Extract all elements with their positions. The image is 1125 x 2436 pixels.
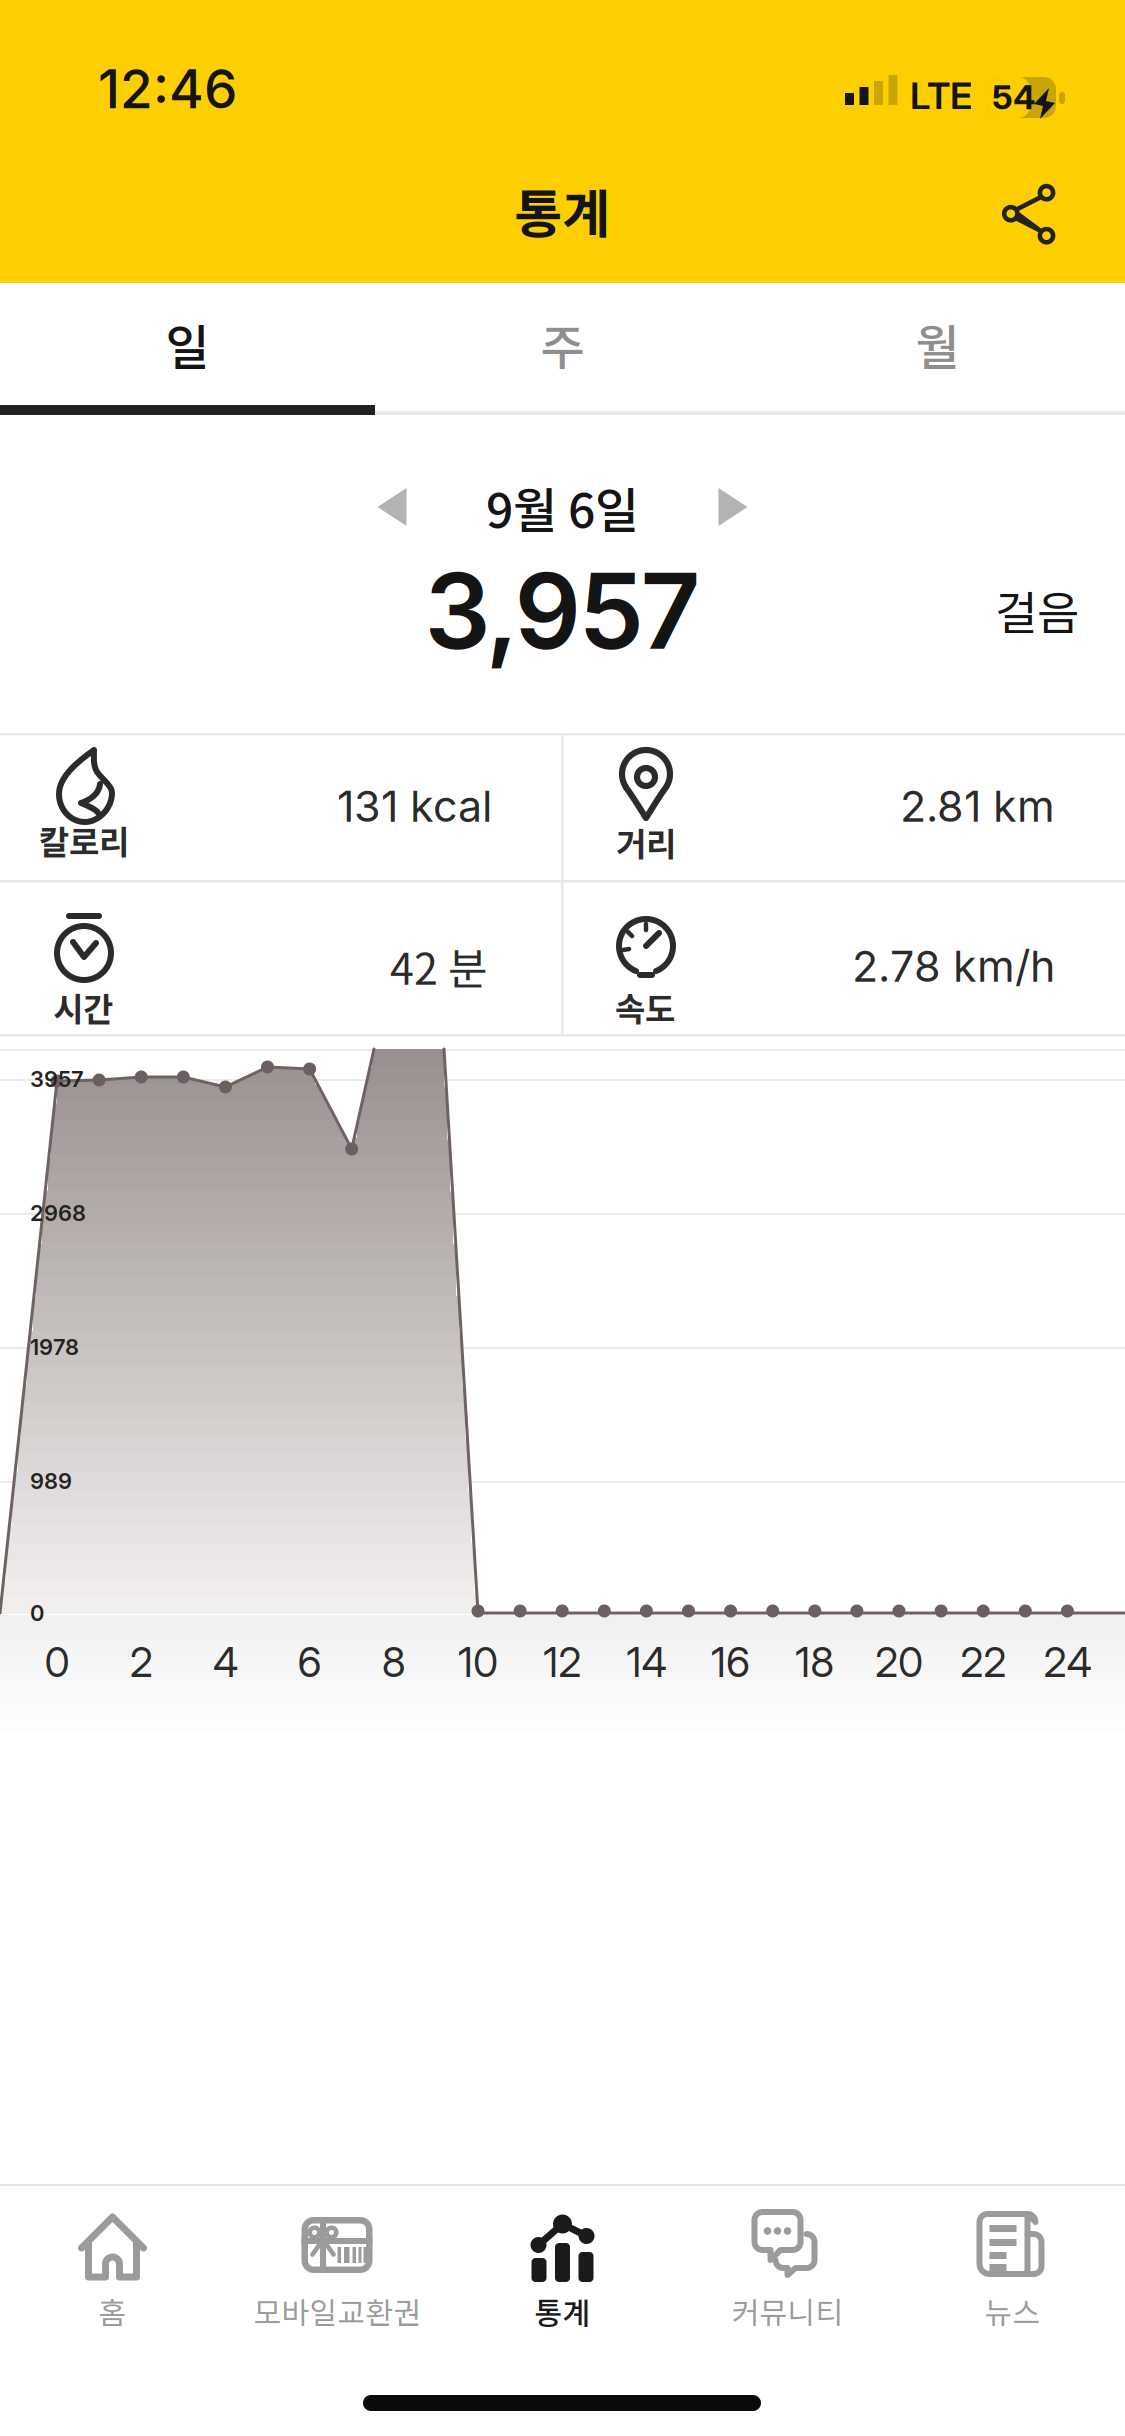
staticText: 1978 (30, 1334, 79, 1360)
button[interactable]: 주 (0, 283, 375, 405)
staticText: 0 (44, 1637, 69, 1687)
staticText: 10 (458, 1637, 498, 1687)
button[interactable]: 모바일교환권 (225, 2187, 450, 2347)
staticText: 12:46 (98, 57, 237, 121)
staticText: 12 (543, 1637, 581, 1687)
staticText: 걸음 (995, 577, 1079, 643)
button[interactable]: 뉴스 (900, 2187, 1125, 2347)
staticText: 4 (213, 1637, 238, 1687)
staticText: 0 (30, 1600, 44, 1626)
staticText: 2.81 km (900, 780, 1055, 832)
staticText: 9월 6일 (486, 472, 639, 542)
staticText: 3957 (30, 1066, 84, 1092)
staticText: LTE (910, 74, 972, 118)
button[interactable]: 월 (0, 283, 375, 405)
staticText: 일 (165, 309, 209, 379)
staticText: 131 kcal (337, 780, 492, 832)
staticText: 뉴스 (984, 2289, 1040, 2333)
staticText: 시간 (53, 983, 113, 1031)
staticText: 속도 (615, 983, 675, 1031)
staticText: 월 (915, 309, 959, 379)
staticText: 3,957 (424, 548, 700, 674)
staticText: 모바일교환권 (253, 2289, 421, 2333)
staticText: 통계 (534, 2289, 590, 2333)
button[interactable]: Share (980, 158, 1080, 270)
button[interactable]: 통계 (450, 2187, 675, 2347)
staticText: 20 (875, 1637, 923, 1687)
staticText: 24 (1043, 1637, 1091, 1687)
staticText: 22 (960, 1637, 1006, 1687)
staticText: 통계 (514, 172, 610, 248)
staticText: 거리 (616, 818, 676, 866)
staticText: 주 (540, 309, 584, 379)
staticText: 2.78 km/h (852, 940, 1055, 992)
staticText: 16 (711, 1637, 750, 1687)
staticText: 2968 (30, 1200, 86, 1226)
button[interactable]: Previous day (354, 469, 430, 545)
button[interactable]: 일 (0, 283, 375, 405)
staticText: 2 (130, 1637, 153, 1687)
staticText: 14 (626, 1637, 666, 1687)
staticText: 989 (30, 1468, 72, 1494)
button[interactable]: Next day (695, 469, 771, 545)
staticText: 커뮤니티 (731, 2289, 843, 2333)
staticText: 42 분 (390, 935, 488, 997)
staticText: 18 (795, 1637, 834, 1687)
staticText: 홈 (98, 2289, 126, 2333)
staticText: 칼로리 (39, 816, 129, 864)
staticText: 54 (992, 76, 1036, 117)
button[interactable]: 홈 (0, 2187, 225, 2347)
button[interactable]: 커뮤니티 (675, 2187, 900, 2347)
staticText: 8 (382, 1637, 406, 1687)
staticText: 6 (298, 1637, 322, 1687)
